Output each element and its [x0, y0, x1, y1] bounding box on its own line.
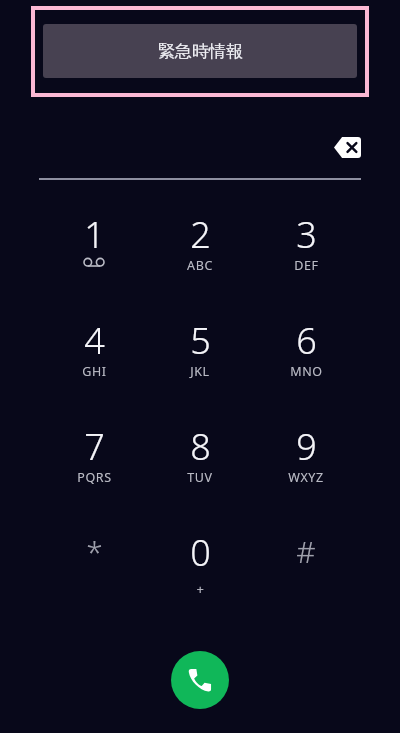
button[interactable]: 2 [153, 210, 247, 294]
staticText: 5 [190, 316, 211, 362]
button[interactable]: 0 [153, 528, 247, 612]
button[interactable]: Call [171, 651, 229, 709]
staticText: 1 [84, 210, 105, 256]
staticText: TUV [187, 469, 213, 486]
button[interactable]: * [47, 528, 141, 612]
button[interactable]: 7 [47, 422, 141, 506]
staticText: ABC [187, 257, 213, 274]
staticText: 緊急時情報 [158, 41, 243, 62]
button[interactable]: 1 [47, 210, 141, 294]
button[interactable]: # [259, 528, 353, 612]
staticText: WXYZ [288, 469, 324, 486]
button[interactable]: 3 [259, 210, 353, 294]
staticText: PQRS [77, 469, 112, 486]
button[interactable]: 9 [259, 422, 353, 506]
staticText: 7 [84, 422, 105, 468]
staticText: MNO [290, 363, 323, 380]
staticText: # [296, 531, 316, 572]
staticText: + [196, 580, 205, 598]
button[interactable]: 5 [153, 316, 247, 400]
staticText: GHI [82, 363, 107, 380]
staticText: 9 [296, 422, 317, 468]
staticText: JKL [190, 363, 210, 380]
staticText: 4 [84, 316, 105, 362]
button[interactable]: Backspace [326, 130, 368, 164]
staticText: 0 [190, 528, 211, 574]
staticText: * [86, 531, 103, 572]
staticText: 8 [190, 422, 211, 468]
button[interactable]: 8 [153, 422, 247, 506]
button[interactable]: 6 [259, 316, 353, 400]
staticText: 3 [296, 210, 317, 256]
button[interactable]: 4 [47, 316, 141, 400]
staticText: DEF [294, 257, 319, 274]
button[interactable]: 緊急時情報 [31, 6, 369, 97]
staticText: 2 [190, 210, 211, 256]
staticText: 6 [296, 316, 317, 362]
